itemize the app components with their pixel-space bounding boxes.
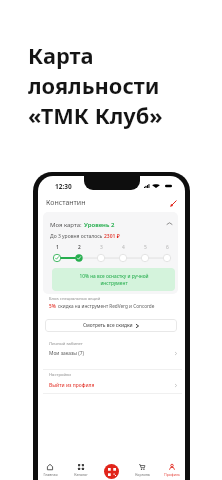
staticText: Настройки [49, 372, 71, 378]
staticText: Профиль [164, 472, 180, 477]
button[interactable]: Свернуть [167, 222, 172, 225]
staticText: Личный кабинет [49, 341, 83, 347]
staticText: «ТМК Клуб» [28, 101, 163, 131]
button[interactable]: Смотреть все скидки [45, 319, 177, 332]
staticText: Смотреть все скидки [83, 322, 133, 329]
staticText: Каталог [74, 472, 88, 477]
staticText: 5 [144, 244, 147, 251]
staticText: Мои заказы (7) [49, 350, 85, 357]
staticText: Выйти из профиля [49, 382, 95, 389]
staticText: Блок специальных акций [49, 296, 101, 302]
button[interactable]: Мои заказы (7) [38, 347, 185, 360]
staticText: 3 [100, 244, 103, 251]
button[interactable]: Каталог [69, 464, 93, 477]
button[interactable]: Выйти из профиля [38, 379, 185, 392]
staticText: 12:30 [55, 182, 72, 191]
staticText: Моя карта: [50, 221, 84, 229]
button[interactable]: Моя карта: [43, 212, 178, 294]
staticText: Карта [28, 41, 94, 71]
staticText: До 3 уровня осталось [50, 233, 104, 240]
button[interactable]: Главная [38, 464, 62, 477]
button[interactable]: Сканировать [104, 464, 119, 479]
staticText: 1 [56, 244, 59, 251]
staticText: Уровень 2 [84, 221, 115, 229]
staticText: 10% на все оснастку и ручной инструмент [79, 273, 149, 287]
button[interactable]: Редактировать [168, 198, 178, 208]
staticText: скидка на инструмент RedVerg и Concorde [58, 303, 155, 309]
staticText: 2 [78, 244, 81, 251]
staticText: Корзина [135, 472, 150, 477]
staticText: 4 [122, 244, 125, 251]
staticText: 2301 ₽ [104, 233, 120, 240]
staticText: 5% [49, 303, 56, 309]
staticText: 6 [166, 244, 169, 251]
staticText: Главная [43, 472, 58, 477]
staticText: Константин [46, 198, 86, 208]
button[interactable]: Корзина [130, 464, 154, 477]
staticText: лояльности [28, 71, 160, 101]
button[interactable]: Профиль [160, 464, 184, 477]
